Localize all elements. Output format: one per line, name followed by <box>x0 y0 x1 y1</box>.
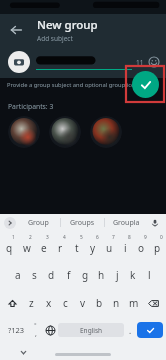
button[interactable]: s <box>26 261 43 289</box>
staticText: 7 <box>112 234 115 241</box>
staticText: m <box>129 296 139 310</box>
staticText: o <box>138 241 145 255</box>
button[interactable]: k <box>125 261 141 289</box>
staticText: 0 <box>160 234 163 241</box>
button[interactable]: x <box>40 289 57 317</box>
staticText: 2 <box>29 234 32 241</box>
staticText: t <box>75 241 79 255</box>
staticText: i <box>124 241 127 255</box>
staticText: h <box>98 268 105 282</box>
button[interactable]: Comma <box>29 317 42 343</box>
staticText: g <box>82 268 89 282</box>
staticText: w <box>23 241 31 255</box>
staticText: Provide a group subject and optional gro… <box>7 81 139 89</box>
button[interactable]: 0 <box>149 231 165 261</box>
button[interactable]: j <box>109 261 125 289</box>
button[interactable]: Period <box>124 317 137 343</box>
staticText: r <box>58 241 63 255</box>
staticText: d <box>48 268 55 282</box>
staticText: u <box>106 241 113 255</box>
staticText: y <box>90 241 96 255</box>
staticText: Participants: 3 <box>8 102 54 111</box>
button[interactable]: Back <box>5 19 27 41</box>
button[interactable]: 6 <box>85 231 101 261</box>
button[interactable]: b <box>91 289 108 317</box>
button[interactable]: l <box>141 261 157 289</box>
button[interactable]: 8 <box>117 231 133 261</box>
button[interactable]: Backspace <box>142 289 165 317</box>
staticText: a <box>15 268 21 282</box>
staticText: k <box>130 268 136 282</box>
staticText: 6 <box>96 234 99 241</box>
staticText: Add subject <box>37 34 73 43</box>
staticText: l <box>148 268 151 282</box>
staticText: x <box>46 296 52 310</box>
staticText: 1 <box>12 234 15 241</box>
button[interactable]: 5 <box>69 231 85 261</box>
button[interactable]: z <box>23 289 40 317</box>
staticText: ° <box>34 321 37 329</box>
staticText: n <box>113 296 120 310</box>
button[interactable]: Hide keyboard <box>18 347 28 357</box>
button[interactable]: ?123 <box>3 317 29 343</box>
button[interactable]: m <box>125 289 142 317</box>
button[interactable]: Participant <box>90 116 122 148</box>
staticText: ?123 <box>8 325 25 335</box>
staticText: f <box>67 268 71 282</box>
button[interactable]: d <box>43 261 60 289</box>
staticText: e <box>41 241 47 255</box>
button[interactable]: 7 <box>101 231 117 261</box>
button[interactable]: 3 <box>35 231 52 261</box>
button[interactable]: Emoji <box>148 56 160 68</box>
button[interactable]: Expand toolbar <box>4 217 16 229</box>
staticText: 3 <box>46 234 49 241</box>
staticText: j <box>116 268 119 282</box>
button[interactable]: Add group icon <box>8 51 30 73</box>
staticText: 5 <box>80 234 83 241</box>
staticText: Groups <box>70 218 95 228</box>
button[interactable]: Participant <box>8 116 40 148</box>
button[interactable]: 9 <box>133 231 149 261</box>
button[interactable]: Change language <box>42 317 58 343</box>
staticText: 8 <box>128 234 131 241</box>
button[interactable]: Enter <box>137 322 163 338</box>
button[interactable]: Participant <box>49 116 81 148</box>
staticText: New group <box>37 17 98 33</box>
button[interactable]: h <box>93 261 109 289</box>
staticText: c <box>63 296 68 310</box>
button[interactable]: g <box>77 261 93 289</box>
staticText: , <box>35 329 37 339</box>
staticText: 9 <box>144 234 147 241</box>
staticText: 4 <box>63 234 66 241</box>
button[interactable]: f <box>60 261 77 289</box>
staticText: v <box>80 296 86 310</box>
button[interactable]: English <box>58 323 124 337</box>
button[interactable]: Shift <box>1 289 23 317</box>
staticText: Group <box>28 218 49 228</box>
button[interactable]: v <box>74 289 91 317</box>
staticText: s <box>32 268 37 282</box>
staticText: z <box>29 296 34 310</box>
button[interactable]: 1 <box>1 231 18 261</box>
button[interactable]: Create group <box>132 71 159 98</box>
staticText: q <box>6 241 13 255</box>
staticText: . <box>129 325 132 336</box>
staticText: 11 <box>136 58 144 67</box>
button[interactable]: 2 <box>18 231 35 261</box>
button[interactable]: n <box>108 289 125 317</box>
button[interactable]: c <box>57 289 74 317</box>
button[interactable]: 4 <box>52 231 69 261</box>
staticText: b <box>96 296 103 310</box>
button[interactable]: a <box>9 261 26 289</box>
button[interactable]: Voice input <box>148 216 162 230</box>
staticText: Groupla <box>113 218 140 228</box>
staticText: English <box>80 326 103 335</box>
staticText: p <box>154 241 161 255</box>
